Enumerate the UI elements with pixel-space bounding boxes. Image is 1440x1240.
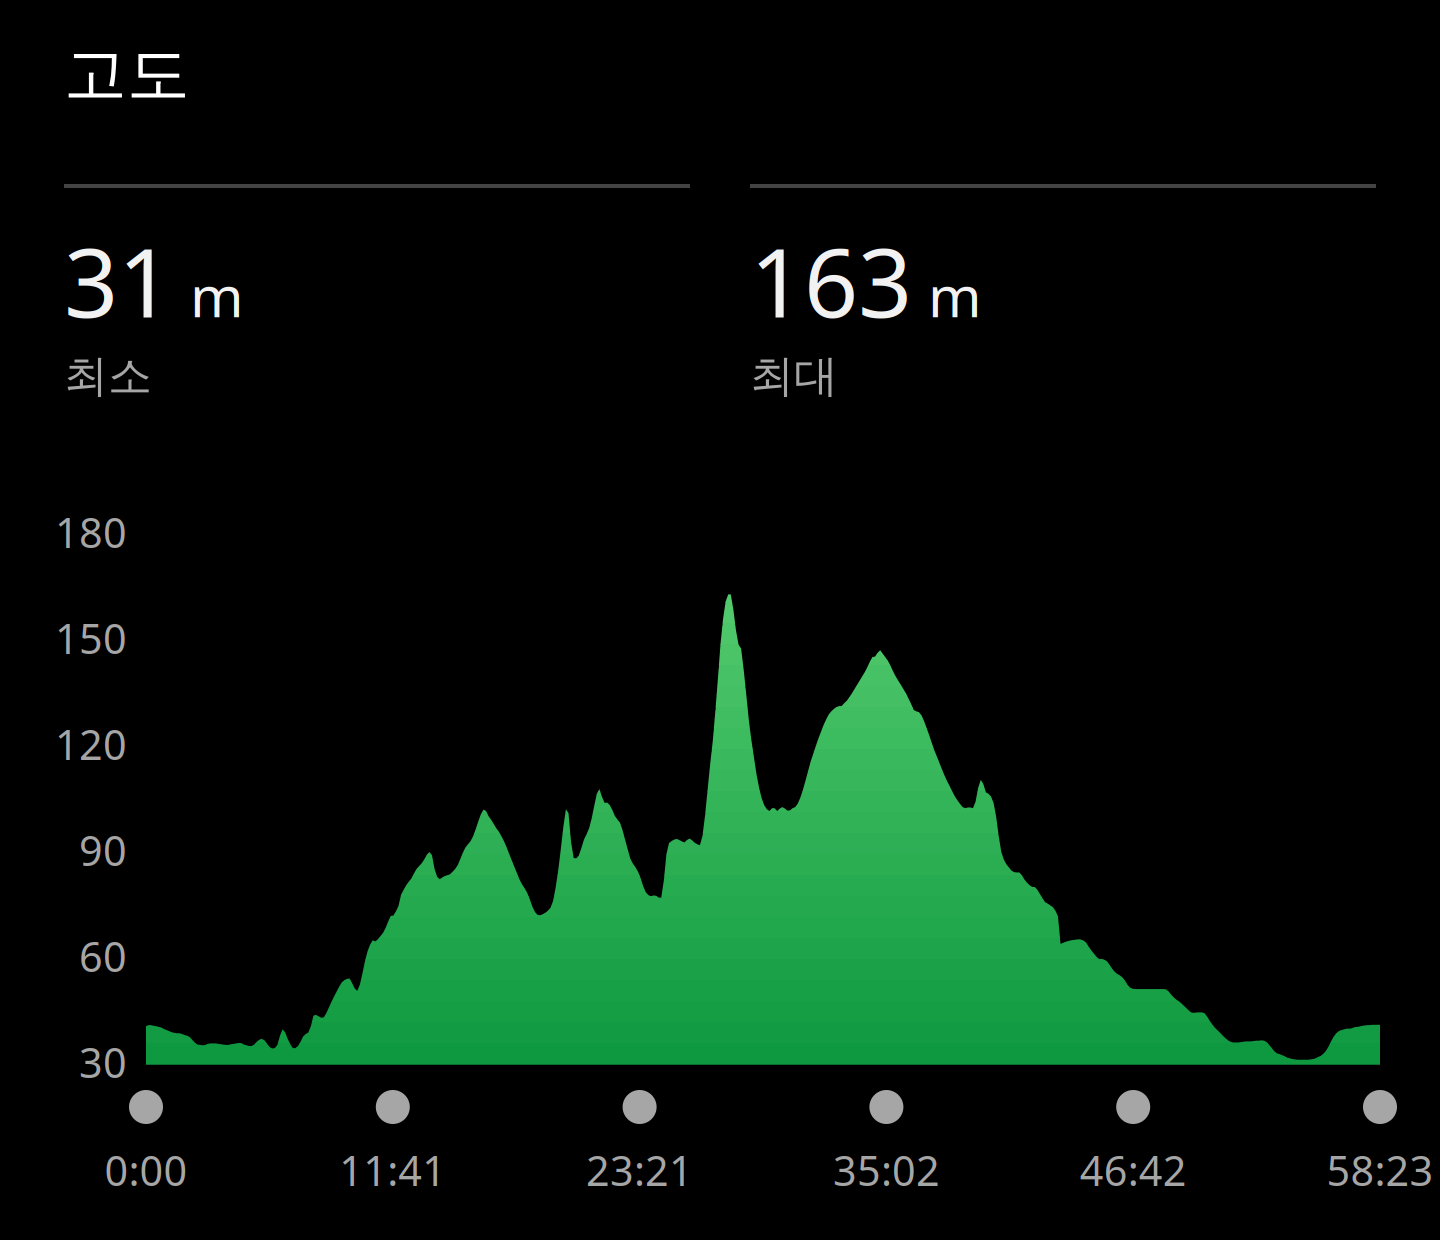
staticText: 90	[79, 823, 127, 877]
staticText: 163	[750, 218, 912, 344]
button[interactable]: 고도 그래프	[146, 560, 1380, 1064]
staticText: 150	[55, 611, 127, 665]
staticText: 23:21	[586, 1143, 693, 1197]
staticText: 11:41	[339, 1143, 446, 1197]
button[interactable]	[750, 184, 1376, 419]
staticText: 0:00	[104, 1143, 187, 1197]
staticText: 35:02	[833, 1143, 940, 1197]
staticText: 120	[55, 717, 127, 771]
staticText: m	[190, 257, 244, 333]
staticText: m	[928, 257, 982, 333]
staticText: 30	[79, 1035, 127, 1089]
staticText: 최소	[64, 349, 152, 403]
staticText: 고도	[64, 36, 190, 113]
staticText: 58:23	[1326, 1143, 1433, 1197]
staticText: 최대	[750, 349, 838, 403]
staticText: 180	[55, 505, 127, 559]
staticText: 31	[64, 218, 172, 344]
button[interactable]	[64, 184, 690, 419]
staticText: 46:42	[1080, 1143, 1187, 1197]
staticText: 60	[79, 929, 127, 983]
